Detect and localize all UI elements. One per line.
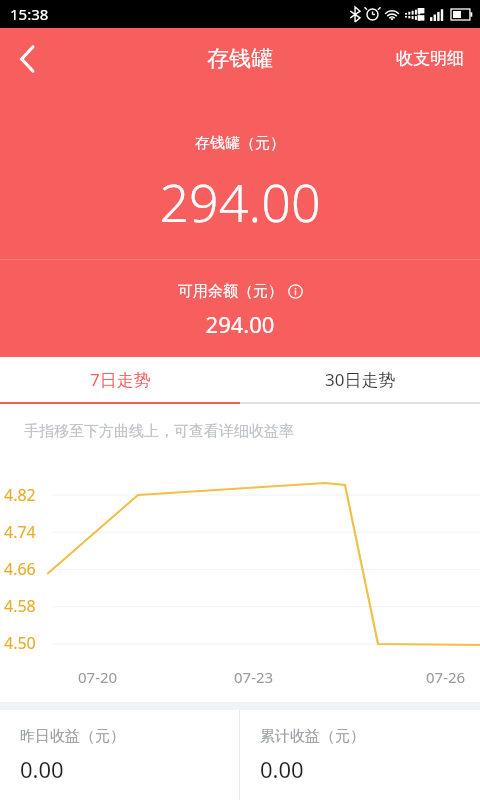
staticText: 294.00 (0, 309, 480, 339)
button[interactable]: 7日走势 (0, 357, 240, 402)
button[interactable]: 30日走势 (240, 357, 480, 402)
staticText: 存钱罐 (207, 45, 273, 73)
staticText: 4.82 (4, 484, 36, 506)
staticText: 0.00 (260, 754, 304, 784)
button[interactable]: 可用余额（元） (0, 282, 480, 301)
staticText: 0.00 (20, 754, 64, 784)
staticText: 30日走势 (325, 368, 396, 391)
staticText: 收支明细 (396, 48, 464, 69)
button[interactable]: 收支明细 (380, 28, 480, 89)
staticText: 4.50 (4, 632, 36, 654)
staticText: 可用余额（元） (178, 282, 283, 301)
staticText: 4.66 (4, 558, 36, 580)
staticText: 存钱罐（元） (0, 134, 480, 153)
staticText: 15:38 (10, 4, 49, 24)
button[interactable]: 累计收益（元） (240, 710, 480, 800)
staticText: 4.74 (4, 521, 36, 543)
staticText: 7日走势 (90, 368, 151, 391)
staticText: 累计收益（元） (260, 727, 365, 746)
staticText: 07-26 (426, 667, 466, 687)
button[interactable]: Back (0, 28, 54, 89)
staticText: 4.58 (4, 595, 36, 617)
staticText: 07-23 (234, 667, 274, 687)
staticText: 07-20 (78, 667, 118, 687)
staticText: 昨日收益（元） (20, 727, 125, 746)
staticText: 294.00 (0, 166, 480, 237)
staticText: 手指移至下方曲线上，可查看详细收益率 (24, 422, 294, 441)
button[interactable]: 昨日收益（元） (0, 710, 239, 800)
